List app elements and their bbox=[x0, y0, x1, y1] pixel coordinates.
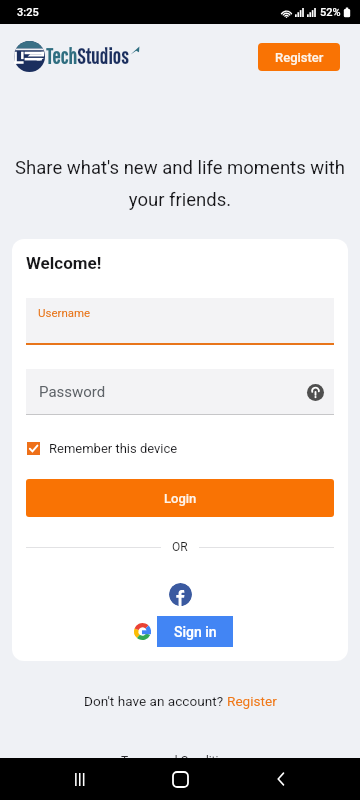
staticText: OR bbox=[172, 540, 188, 554]
staticText: 3:25 bbox=[17, 6, 39, 19]
staticText: Login bbox=[164, 491, 197, 506]
button[interactable]: Sign in bbox=[127, 616, 233, 647]
button[interactable]: Remember this device bbox=[27, 441, 178, 456]
staticText: Welcome! bbox=[26, 253, 102, 273]
staticText: Don't have an account? bbox=[84, 693, 227, 709]
button[interactable]: Don't have an account? bbox=[84, 693, 277, 709]
button[interactable]: Recent apps bbox=[57, 758, 101, 800]
button[interactable]: Register bbox=[258, 43, 340, 71]
staticText: Password bbox=[39, 383, 106, 401]
staticText: Register bbox=[275, 50, 324, 65]
staticText: Share what's new and life moments with y… bbox=[12, 157, 348, 210]
button[interactable]: Password bbox=[26, 369, 334, 415]
button[interactable]: Sign in with Facebook bbox=[169, 583, 192, 606]
button[interactable]: Username bbox=[26, 298, 334, 345]
staticText: Register bbox=[227, 693, 277, 709]
button[interactable]: Home bbox=[158, 758, 202, 800]
button[interactable]: Back bbox=[259, 758, 303, 800]
staticText: 52% bbox=[320, 6, 341, 19]
staticText: Remember this device bbox=[49, 441, 178, 456]
button[interactable]: Login bbox=[26, 479, 334, 517]
staticText: Username bbox=[38, 306, 91, 319]
staticText: Sign in bbox=[174, 624, 217, 640]
staticText: Terms and Conditions bbox=[121, 754, 239, 768]
button[interactable]: Password help bbox=[307, 384, 324, 401]
staticText: TechStudios bbox=[46, 43, 129, 68]
